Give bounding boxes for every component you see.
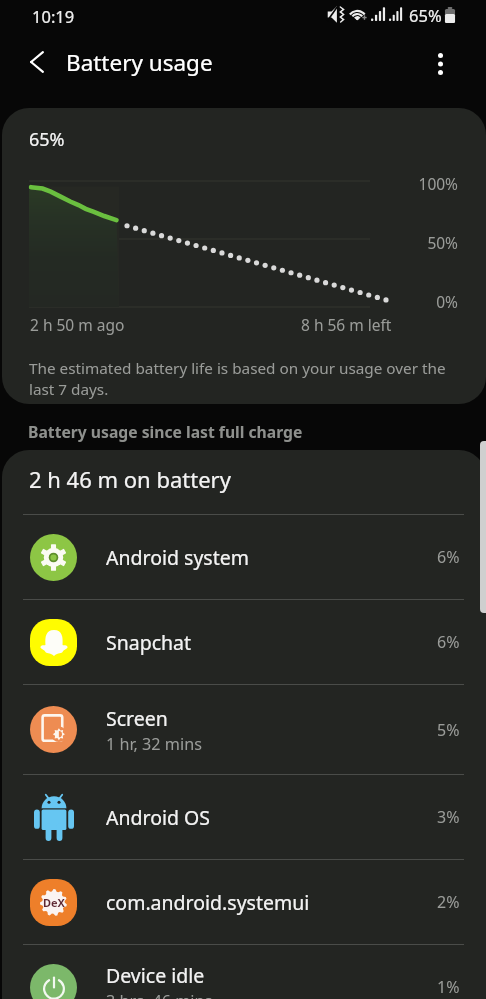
staticText: 65%: [29, 127, 65, 152]
staticText: 50%: [339, 232, 458, 253]
button[interactable]: Android OS: [2, 775, 486, 859]
staticText: 10:19: [32, 5, 75, 27]
staticText: 2 h 46 m on battery: [29, 464, 231, 494]
staticText: 8 h 56 m left: [301, 314, 392, 335]
staticText: 65%: [409, 4, 442, 26]
staticText: The estimated battery life is based on y…: [29, 358, 461, 399]
button[interactable]: Device idle: [2, 945, 486, 999]
staticText: DeX: [43, 895, 65, 910]
staticText: 1 hr, 32 mins: [106, 733, 202, 755]
staticText: Screen: [106, 705, 168, 732]
staticText: 3%: [437, 806, 460, 828]
staticText: 6%: [437, 631, 460, 653]
staticText: Battery usage since last full charge: [28, 421, 303, 442]
staticText: 2 h 50 m ago: [30, 314, 125, 335]
staticText: Android OS: [106, 804, 210, 831]
button[interactable]: Snapchat: [2, 600, 486, 684]
button[interactable]: Android system: [2, 515, 486, 599]
staticText: 0%: [339, 291, 458, 312]
staticText: 6%: [437, 546, 460, 568]
staticText: Device idle: [106, 962, 205, 989]
button[interactable]: DeX: [2, 860, 486, 944]
staticText: 100%: [339, 173, 458, 194]
button[interactable]: More options: [418, 42, 462, 86]
button[interactable]: Back: [14, 39, 60, 85]
staticText: 3 hrs, 46 mins: [106, 990, 213, 999]
staticText: com.android.systemui: [106, 889, 310, 916]
staticText: Battery usage: [66, 47, 213, 78]
staticText: Snapchat: [106, 629, 192, 656]
staticText: Android system: [106, 544, 249, 571]
staticText: 5%: [437, 719, 460, 741]
button[interactable]: Screen: [2, 685, 486, 774]
staticText: 1%: [437, 976, 460, 998]
staticText: 2%: [437, 891, 460, 913]
